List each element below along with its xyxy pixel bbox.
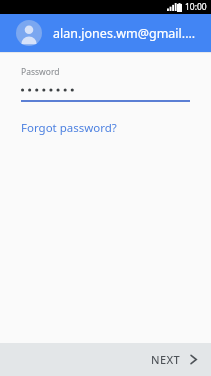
button[interactable]: alan.jones.wm@gmail.... — [0, 14, 211, 52]
staticText: Forgot password? — [21, 120, 117, 136]
staticText: NEXT — [151, 352, 181, 367]
button[interactable]: Password — [0, 66, 211, 102]
button[interactable]: Forgot password? — [21, 118, 117, 138]
staticText: alan.jones.wm@gmail.... — [53, 25, 196, 42]
staticText: Password — [21, 66, 60, 78]
other: Next — [190, 354, 197, 365]
staticText: 10:00 — [185, 1, 207, 13]
button[interactable]: NEXT — [137, 345, 211, 374]
